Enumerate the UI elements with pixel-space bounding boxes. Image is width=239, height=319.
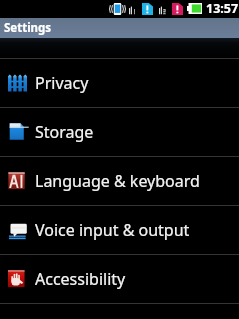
staticText: 13:57 — [206, 0, 239, 17]
button[interactable]: Storage — [0, 108, 239, 156]
staticText: Storage — [35, 121, 94, 143]
staticText: Settings — [4, 20, 52, 36]
button[interactable]: Privacy — [0, 59, 239, 107]
staticText: Language & keyboard — [35, 170, 200, 192]
button[interactable]: Accessibility — [0, 255, 239, 303]
button[interactable]: Language & keyboard — [0, 157, 239, 205]
button[interactable]: Voice input & output — [0, 206, 239, 254]
staticText: Voice input & output — [35, 219, 190, 241]
staticText: Accessibility — [35, 268, 126, 290]
staticText: Privacy — [35, 72, 89, 94]
